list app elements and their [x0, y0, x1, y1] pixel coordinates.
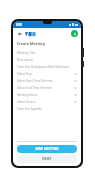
- staticText: Select Start Time (hh:mm): [17, 79, 74, 83]
- button[interactable]: Back: [16, 30, 23, 37]
- staticText: RESET: [42, 157, 52, 161]
- button[interactable]: Profile: [71, 30, 78, 37]
- button[interactable]: Select Device: [17, 98, 77, 105]
- button[interactable]: Description: [17, 56, 77, 63]
- button[interactable]: Enter the Participants Mail Addresses: [17, 63, 77, 70]
- button[interactable]: SAVE MEETING: [17, 145, 77, 153]
- staticText: Enter the Participants Mail Addresses: [17, 65, 77, 69]
- staticText: Meeting Room: [17, 93, 74, 97]
- button[interactable]: Select Day: [17, 70, 77, 77]
- button[interactable]: Select Start Time (hh:mm): [17, 77, 77, 84]
- staticText: Select End Time (hh:mm): [17, 86, 74, 90]
- staticText: SAVE MEETING: [35, 147, 59, 151]
- button[interactable]: Select End Time (hh:mm): [17, 84, 77, 91]
- button[interactable]: App logo: [25, 31, 36, 37]
- staticText: Select Day: [17, 72, 74, 76]
- button[interactable]: Meeting Room: [17, 91, 77, 98]
- button[interactable]: Meeting Title: [17, 49, 77, 56]
- button[interactable]: Enter the Agenda: [17, 105, 77, 112]
- staticText: Meeting Title: [17, 51, 77, 55]
- staticText: Select Device: [17, 100, 74, 104]
- staticText: Description: [17, 58, 77, 62]
- staticText: Enter the Agenda: [17, 107, 77, 111]
- staticText: Create Meeting: [17, 41, 45, 46]
- button[interactable]: RESET: [17, 155, 77, 163]
